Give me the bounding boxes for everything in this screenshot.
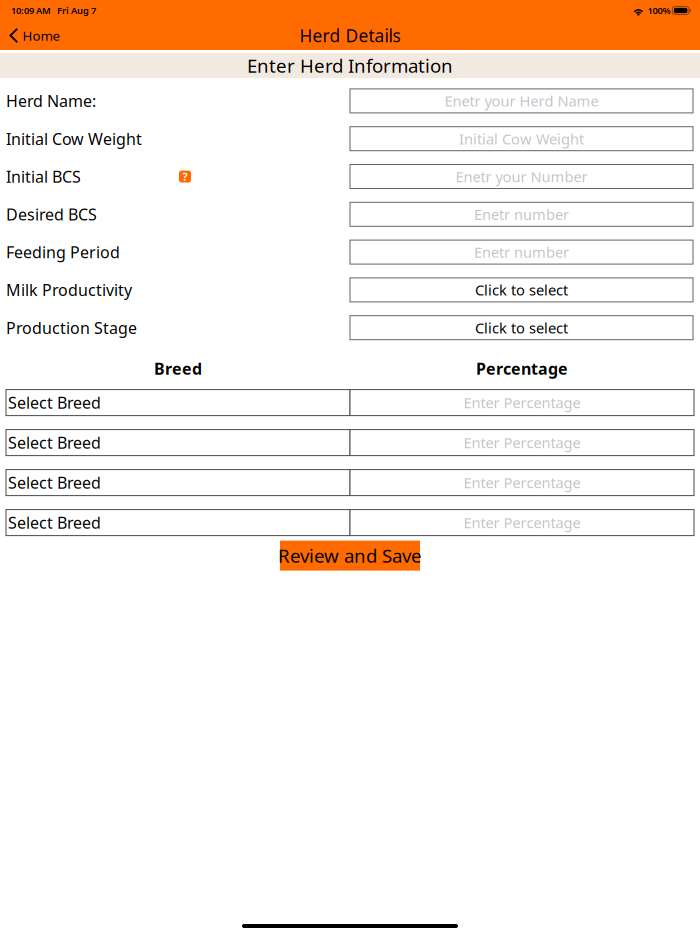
staticText: Enter Herd Information — [247, 53, 453, 78]
staticText: Click to select — [475, 318, 568, 337]
button[interactable]: Enetr your Number — [350, 164, 693, 188]
staticText: Enetr number — [474, 205, 569, 224]
staticText: Select Breed — [8, 392, 101, 413]
button[interactable]: Enter Percentage — [350, 510, 694, 536]
button[interactable]: What is Initial BCS — [179, 170, 191, 182]
staticText: Enetr your Herd Name — [444, 91, 598, 111]
staticText: Home — [23, 27, 61, 44]
staticText: Select Breed — [8, 432, 101, 453]
staticText: Select Breed — [8, 472, 101, 493]
button[interactable]: Initial Cow Weight — [350, 127, 693, 151]
button[interactable]: Enetr number — [350, 202, 693, 226]
staticText: Enter Percentage — [463, 513, 580, 532]
staticText: Select Breed — [8, 512, 101, 533]
staticText: Initial Cow Weight — [6, 128, 142, 149]
staticText: ? — [182, 169, 187, 184]
staticText: Desired BCS — [6, 204, 97, 225]
staticText: Herd Details — [299, 24, 400, 47]
staticText: Percentage — [476, 358, 568, 379]
staticText: Fri Aug 7 — [57, 4, 96, 17]
button[interactable]: Select Breed — [6, 470, 350, 496]
staticText: Enetr number — [474, 242, 569, 262]
staticText: Enter Percentage — [463, 433, 580, 452]
button[interactable]: Select Breed — [6, 430, 350, 456]
staticText: Milk Productivity — [6, 279, 132, 300]
button[interactable]: Review and Save — [280, 541, 420, 571]
staticText: 100% — [647, 4, 670, 17]
staticText: Initial Cow Weight — [459, 129, 584, 148]
button[interactable]: Click to select — [350, 316, 693, 340]
staticText: 10:09 AM — [11, 4, 51, 17]
staticText: Click to select — [475, 280, 568, 300]
button[interactable]: Select Breed — [6, 510, 350, 536]
button[interactable]: Enetr number — [350, 240, 693, 264]
staticText: Breed — [154, 358, 202, 379]
button[interactable]: Enetr your Herd Name — [350, 89, 693, 113]
staticText: Initial BCS — [6, 166, 81, 187]
staticText: Enetr your Number — [455, 167, 587, 186]
staticText: Herd Name: — [6, 90, 96, 111]
staticText: Enter Percentage — [463, 393, 580, 412]
button[interactable]: Home — [0, 21, 70, 50]
staticText: Feeding Period — [6, 241, 120, 263]
staticText: Production Stage — [6, 317, 137, 338]
button[interactable]: Click to select — [350, 278, 693, 302]
button[interactable]: Select Breed — [6, 390, 350, 416]
button[interactable]: Enter Percentage — [350, 430, 694, 456]
button[interactable]: Enter Percentage — [350, 390, 694, 416]
staticText: Enter Percentage — [463, 473, 580, 492]
button[interactable]: Enter Percentage — [350, 470, 694, 496]
staticText: Review and Save — [278, 543, 422, 568]
